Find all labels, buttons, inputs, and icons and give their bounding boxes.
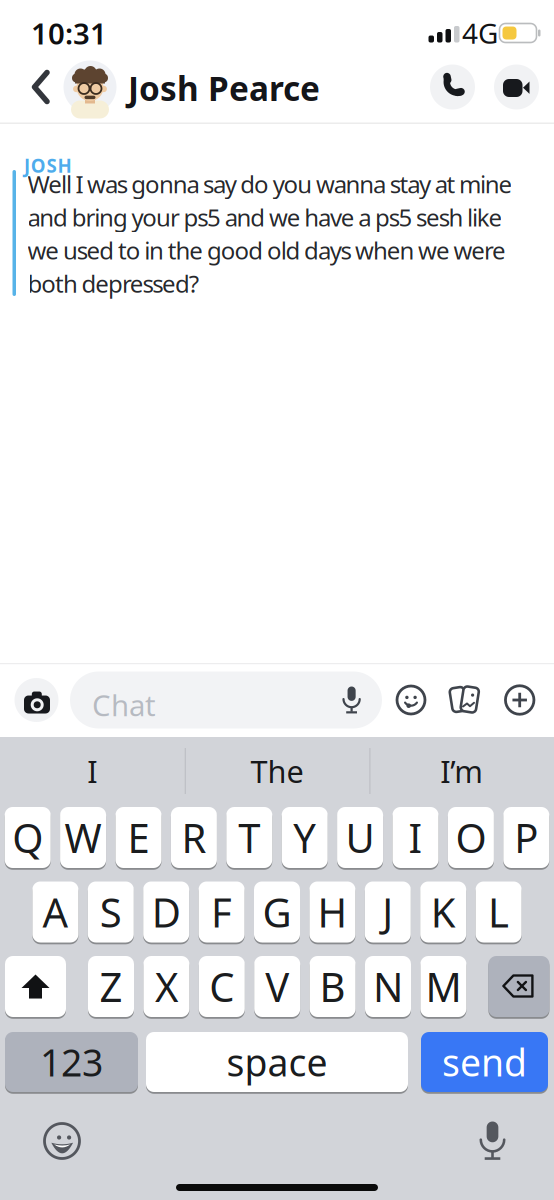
button[interactable]: Emoji (38, 1117, 85, 1164)
staticText: The (250, 751, 303, 791)
button[interactable]: D (143, 880, 189, 943)
staticText: D (152, 885, 181, 938)
staticText: S (47, 153, 57, 178)
button[interactable]: A (32, 880, 78, 943)
button[interactable]: X (143, 955, 189, 1018)
button[interactable]: Call (430, 64, 475, 109)
button[interactable]: send (421, 1031, 548, 1093)
button[interactable]: R (171, 806, 217, 869)
staticText: L (488, 885, 509, 938)
staticText: U (346, 811, 375, 864)
staticText: space (226, 1037, 327, 1087)
button[interactable]: L (476, 880, 522, 943)
button[interactable]: Q (5, 806, 51, 869)
staticText: we used to in the good old days when we … (27, 234, 506, 266)
button[interactable]: B (310, 955, 356, 1018)
staticText: J (382, 885, 393, 938)
staticText: V (265, 960, 289, 1013)
button[interactable]: T (226, 806, 272, 869)
button[interactable]: M (420, 955, 466, 1018)
staticText: E (127, 811, 149, 864)
staticText: Y (293, 811, 316, 864)
button[interactable]: O (448, 806, 494, 869)
button[interactable]: E (115, 806, 161, 869)
staticText: H (57, 153, 71, 178)
staticText: M (425, 960, 461, 1013)
staticText: O (455, 811, 486, 864)
staticText: Well I was gonna say do you wanna stay a… (27, 168, 512, 200)
staticText: 123 (40, 1037, 103, 1087)
button[interactable]: The (192, 741, 362, 801)
staticText: F (211, 885, 232, 938)
button[interactable]: I (7, 741, 177, 801)
button[interactable]: H (309, 880, 355, 943)
button[interactable]: P (503, 806, 549, 869)
button[interactable]: Stickers (393, 682, 429, 718)
button[interactable]: space (146, 1031, 408, 1093)
staticText: Z (99, 960, 122, 1013)
button[interactable]: I’m (377, 741, 547, 801)
staticText: both depressed? (27, 267, 199, 299)
staticText: N (373, 960, 403, 1013)
button[interactable]: V (254, 955, 300, 1018)
staticText: H (317, 885, 347, 938)
staticText: C (209, 960, 234, 1013)
button[interactable]: Memories (444, 680, 484, 720)
staticText: and bring your ps5 and we have a ps5 ses… (27, 201, 502, 233)
staticText: Q (12, 811, 43, 864)
button[interactable]: Chat (70, 671, 382, 728)
button[interactable]: K (420, 880, 466, 943)
staticText: P (514, 811, 538, 864)
button[interactable]: J (365, 880, 411, 943)
button[interactable]: Delete (488, 955, 549, 1018)
button[interactable]: More (501, 681, 538, 718)
button[interactable]: Camera (14, 678, 58, 722)
button[interactable]: F (199, 880, 245, 943)
staticText: Chat (92, 685, 156, 724)
button[interactable]: Dictation (468, 1115, 517, 1166)
staticText: 4G (462, 14, 498, 52)
staticText: W (65, 811, 102, 864)
staticText: send (442, 1037, 527, 1087)
button[interactable]: Z (88, 955, 134, 1018)
staticText: B (320, 960, 346, 1013)
staticText: J (24, 153, 30, 178)
button[interactable]: I (392, 806, 438, 869)
staticText: R (181, 811, 206, 864)
staticText: A (42, 885, 68, 938)
button[interactable]: S (88, 880, 134, 943)
button[interactable]: N (365, 955, 411, 1018)
staticText: I (408, 811, 422, 864)
staticText: T (238, 811, 260, 864)
button[interactable]: Profile (63, 60, 116, 113)
button[interactable]: Shift (5, 955, 66, 1018)
staticText: Josh Pearce (128, 66, 320, 110)
button[interactable]: Y (282, 806, 328, 869)
staticText: I (87, 751, 97, 791)
button[interactable]: Back (21, 59, 61, 114)
button[interactable]: G (254, 880, 300, 943)
staticText: I’m (440, 751, 483, 791)
staticText: K (431, 885, 456, 938)
staticText: O (31, 153, 46, 178)
button[interactable]: C (199, 955, 245, 1018)
button[interactable]: 123 (5, 1031, 138, 1093)
staticText: X (155, 960, 178, 1013)
button[interactable]: Video call (494, 64, 539, 109)
staticText: S (100, 885, 122, 938)
staticText: G (262, 885, 291, 938)
button[interactable]: W (60, 806, 106, 869)
staticText: 10:31 (31, 13, 107, 52)
button[interactable]: U (337, 806, 383, 869)
